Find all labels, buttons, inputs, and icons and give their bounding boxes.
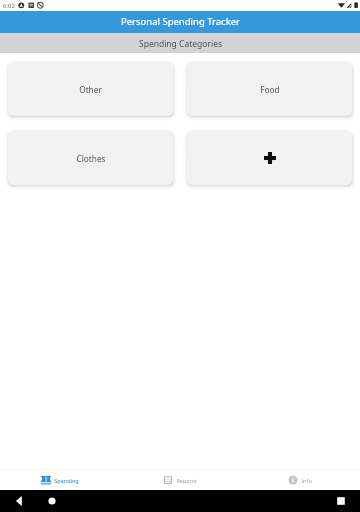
button[interactable]: Spending <box>0 470 120 490</box>
staticText: Spending Categories <box>139 38 222 50</box>
staticText: Spending <box>54 477 79 484</box>
button[interactable]: Reports <box>120 470 240 490</box>
staticText: Clothes <box>76 153 106 164</box>
button[interactable]: Food <box>187 62 352 116</box>
staticText: Personal Spending Tracker <box>121 15 240 28</box>
button[interactable]: Add category <box>187 131 352 185</box>
button[interactable]: Home <box>36 490 66 512</box>
button[interactable]: Clothes <box>8 131 173 185</box>
button[interactable]: Recent apps <box>337 490 360 512</box>
staticText: Food <box>260 84 280 95</box>
staticText: Reports <box>176 477 197 484</box>
button[interactable]: Other <box>8 62 173 116</box>
staticText: Info <box>301 477 312 484</box>
staticText: 6:02 <box>3 2 15 10</box>
button[interactable]: Info <box>240 470 360 490</box>
button[interactable]: Back <box>0 490 36 512</box>
staticText: Other <box>79 84 102 95</box>
